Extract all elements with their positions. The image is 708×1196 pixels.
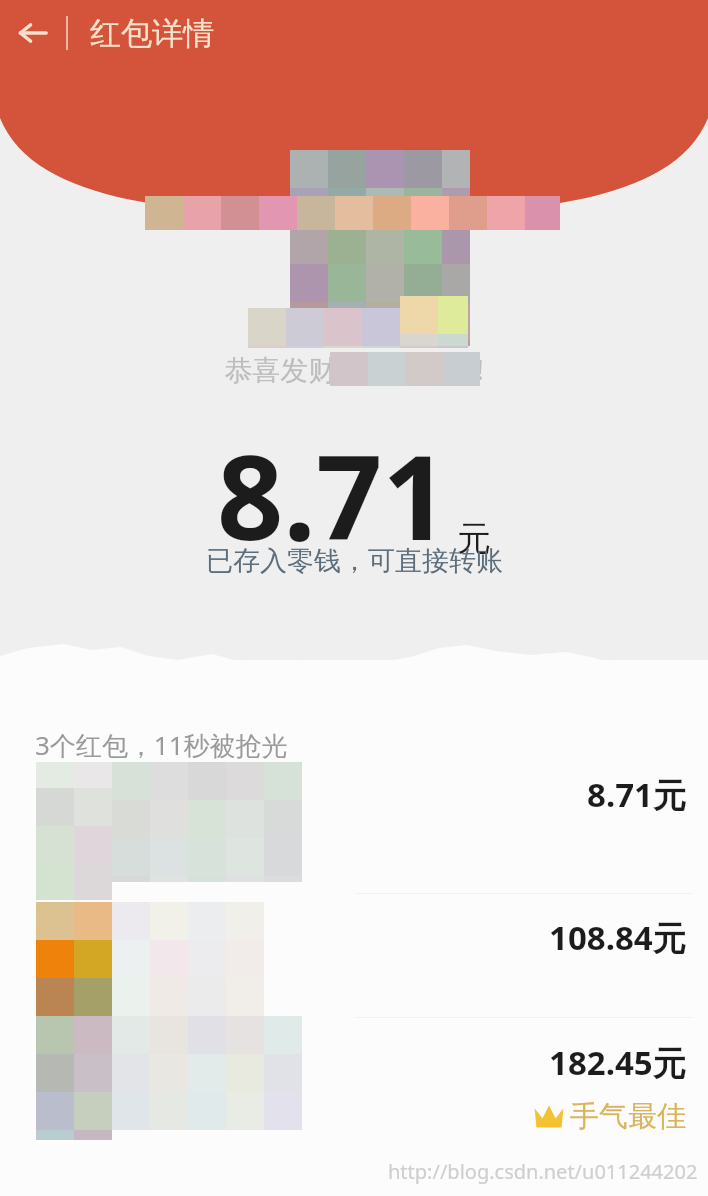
staticText: 108.84元 <box>549 915 686 960</box>
staticText: 元 <box>457 517 491 560</box>
staticText: 红包详情 <box>90 14 214 53</box>
staticText: 8.71元 <box>587 772 686 817</box>
staticText: 3个红包，11秒被抢光 <box>35 727 288 763</box>
staticText: 恭喜发财，大吉大利! <box>224 350 484 388</box>
button[interactable]: 手气最佳 <box>0 1098 708 1135</box>
staticText: 8.71 <box>217 416 449 574</box>
staticText: 手气最佳 <box>570 1098 686 1135</box>
button[interactable]: Back <box>0 0 66 66</box>
button[interactable]: 182.45元 <box>0 1040 708 1085</box>
staticText: 182.45元 <box>549 1040 686 1085</box>
staticText: 已存入零钱，可直接转账 <box>206 544 503 578</box>
staticText: http://blog.csdn.net/u011244202 <box>388 1158 698 1185</box>
button[interactable]: 8.71元 <box>0 772 708 817</box>
button[interactable]: 108.84元 <box>0 915 708 960</box>
